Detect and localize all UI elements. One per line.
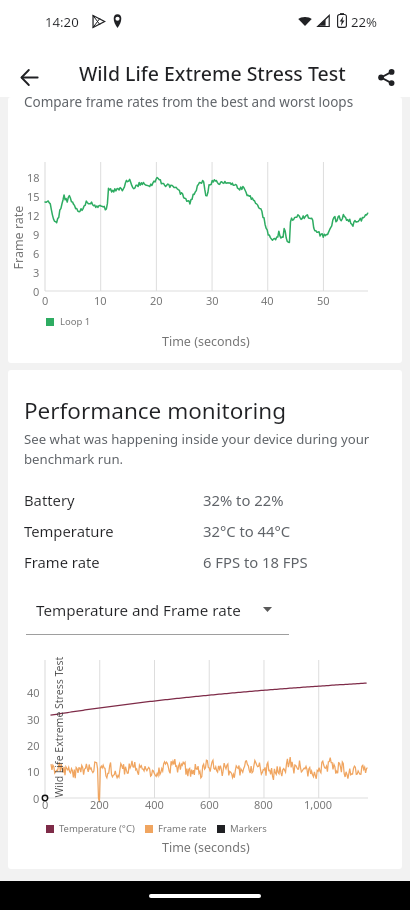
staticText: Compare frame rates from the best and wo… xyxy=(24,97,354,111)
staticText: Frame rate xyxy=(158,822,207,835)
staticText: 32°C to 44°C xyxy=(203,521,291,541)
staticText: 10 xyxy=(94,293,107,308)
staticText: 6 FPS to 18 FPS xyxy=(203,552,308,572)
staticText: Performance monitoring xyxy=(24,395,287,426)
staticText: 18 xyxy=(27,170,40,185)
staticText: 0 xyxy=(33,284,40,299)
staticText: See what was happening inside your devic… xyxy=(24,430,396,468)
button[interactable]: Back xyxy=(5,53,53,101)
staticText: 22% xyxy=(351,13,378,31)
staticText: Frame rate xyxy=(9,205,26,269)
staticText: Wild Life Extreme Stress Test xyxy=(51,656,65,797)
button[interactable]: Share xyxy=(362,53,410,101)
staticText: 400 xyxy=(145,797,164,812)
staticText: 3 xyxy=(33,265,40,280)
staticText: 0 xyxy=(42,797,49,812)
staticText: 200 xyxy=(90,797,109,812)
staticText: Temperature and Frame rate xyxy=(36,600,241,621)
staticText: 32% to 22% xyxy=(203,490,284,510)
staticText: 12 xyxy=(27,208,40,223)
staticText: 0 xyxy=(42,293,49,308)
staticText: 15 xyxy=(27,189,40,204)
staticText: 800 xyxy=(254,797,273,812)
staticText: 20 xyxy=(27,738,40,753)
staticText: 1,000 xyxy=(304,797,333,812)
staticText: 0 xyxy=(33,791,40,806)
staticText: 40 xyxy=(27,685,40,700)
staticText: Frame rate xyxy=(24,552,100,572)
staticText: 30 xyxy=(206,293,219,308)
staticText: 30 xyxy=(27,712,40,727)
staticText: Loop 1 xyxy=(60,315,91,328)
staticText: 600 xyxy=(200,797,219,812)
staticText: 9 xyxy=(33,227,40,242)
staticText: Time (seconds) xyxy=(162,839,250,856)
staticText: Temperature xyxy=(24,521,114,541)
staticText: Temperature (°C) xyxy=(59,822,135,835)
staticText: Wild Life Extreme Stress Test xyxy=(79,60,346,87)
staticText: 10 xyxy=(27,764,40,779)
staticText: 50 xyxy=(317,293,330,308)
staticText: 6 xyxy=(33,246,40,261)
staticText: 14:20 xyxy=(45,13,79,31)
staticText: Markers xyxy=(230,822,267,835)
button[interactable]: Temperature and Frame rate xyxy=(26,597,289,635)
staticText: 20 xyxy=(150,293,163,308)
staticText: Battery xyxy=(24,490,75,510)
staticText: Time (seconds) xyxy=(162,333,250,350)
staticText: 40 xyxy=(261,293,274,308)
